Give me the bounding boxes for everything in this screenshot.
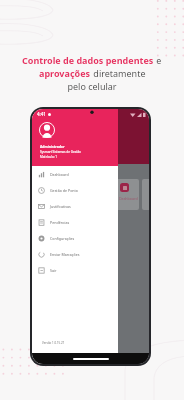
staticText: Controle de dados pendentes <box>22 54 154 66</box>
staticText: diretamente <box>91 67 146 79</box>
staticText: Dashboard <box>50 172 69 177</box>
staticText: 4:41 <box>37 111 46 117</box>
staticText: Matrícula: 1 <box>40 155 58 159</box>
staticText: Enviar Marcações <box>50 252 80 257</box>
staticText: Sysmart Sistemas de Gestão <box>40 150 81 154</box>
button[interactable]: Dashboard <box>32 166 118 182</box>
staticText: Sair <box>50 268 57 273</box>
button[interactable]: Justificativas <box>32 198 118 214</box>
button[interactable]: Gestão de Ponto <box>32 182 118 198</box>
staticText: Configurações <box>50 236 75 241</box>
button[interactable]: Sair <box>32 262 118 278</box>
staticText: e <box>154 54 162 66</box>
staticText: aprovações <box>39 67 91 79</box>
staticText: Administrador <box>40 144 65 149</box>
staticText: Versão 1.0.15.27 <box>42 341 65 345</box>
staticText: Dashboard <box>119 196 138 201</box>
button[interactable]: Enviar Marcações <box>32 246 118 262</box>
staticText: Gestão de Ponto <box>50 188 78 193</box>
staticText: pelo celular <box>67 80 117 92</box>
button[interactable]: Pendências <box>32 214 118 230</box>
button[interactable]: Configurações <box>32 230 118 246</box>
staticText: Justificativas <box>50 204 71 209</box>
staticText: Pendências <box>50 220 70 225</box>
